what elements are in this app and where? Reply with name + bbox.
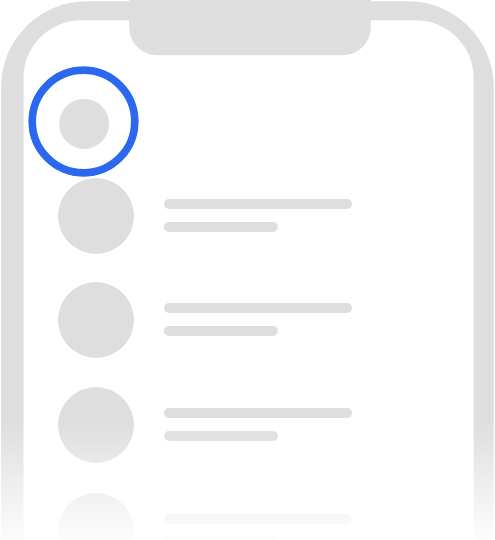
button[interactable]: Contact list item [0,178,495,254]
button[interactable]: Contact list item [0,282,495,358]
button[interactable]: Contact list item [0,387,495,463]
button[interactable]: Contact list item [0,493,495,540]
button[interactable]: Focused contact avatar [28,66,139,177]
